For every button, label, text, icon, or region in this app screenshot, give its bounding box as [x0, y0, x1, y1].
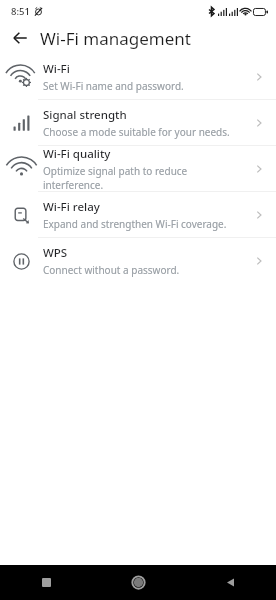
- button[interactable]: Wi-Fi relay: [0, 192, 276, 237]
- staticText: Connect without a password.: [43, 263, 180, 277]
- button[interactable]: Wi-Fi: [0, 54, 276, 99]
- button[interactable]: Back: [184, 565, 276, 600]
- staticText: Optimize signal path to reduce interfere…: [43, 164, 246, 191]
- staticText: Signal strength: [43, 107, 127, 123]
- button[interactable]: Back: [6, 24, 34, 52]
- staticText: Wi-Fi quality: [43, 146, 111, 162]
- staticText: Wi-Fi management: [40, 27, 191, 50]
- button[interactable]: Recents: [0, 565, 92, 600]
- staticText: WPS: [43, 245, 68, 261]
- staticText: Wi-Fi: [43, 61, 70, 77]
- staticText: Wi-Fi relay: [43, 199, 100, 215]
- button[interactable]: WPS: [0, 238, 276, 283]
- button[interactable]: Signal strength: [0, 100, 276, 145]
- button[interactable]: Wi-Fi quality: [0, 146, 276, 191]
- staticText: Set Wi-Fi name and password.: [43, 79, 184, 93]
- staticText: 8:51: [11, 5, 30, 18]
- staticText: Choose a mode suitable for your needs.: [43, 125, 230, 139]
- staticText: Expand and strengthen Wi-Fi coverage.: [43, 217, 227, 231]
- button[interactable]: Home: [92, 565, 184, 600]
